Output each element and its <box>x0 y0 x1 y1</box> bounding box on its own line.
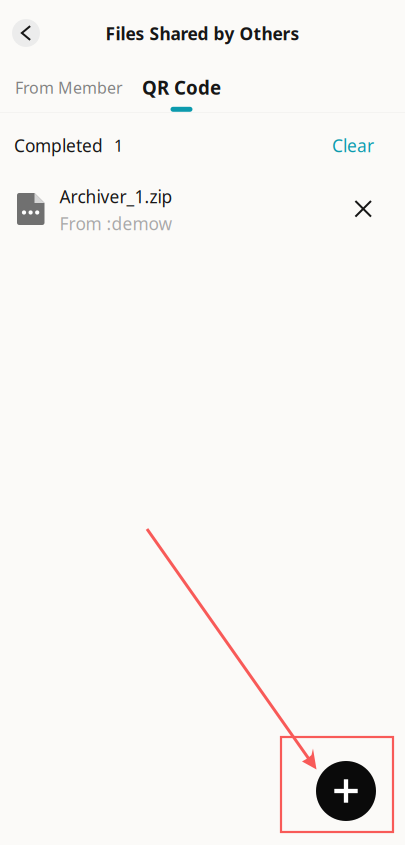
button[interactable]: From Member <box>0 75 131 106</box>
button[interactable]: Clear <box>326 130 380 161</box>
staticText: Completed <box>14 134 103 157</box>
button[interactable]: Archiver_1.zip <box>0 180 336 236</box>
staticText: Archiver_1.zip <box>59 185 172 208</box>
staticText: Files Shared by Others <box>105 22 299 45</box>
staticText: Clear <box>332 134 374 157</box>
staticText: From Member <box>15 77 123 98</box>
staticText: 1 <box>114 135 123 156</box>
button[interactable]: QR Code <box>131 75 232 117</box>
button[interactable]: Remove Archiver_1.zip <box>336 180 390 236</box>
button[interactable]: Add file <box>316 761 376 821</box>
staticText: QR Code <box>142 75 221 100</box>
staticText: From :demow <box>59 212 172 235</box>
button[interactable]: Back <box>12 19 40 47</box>
